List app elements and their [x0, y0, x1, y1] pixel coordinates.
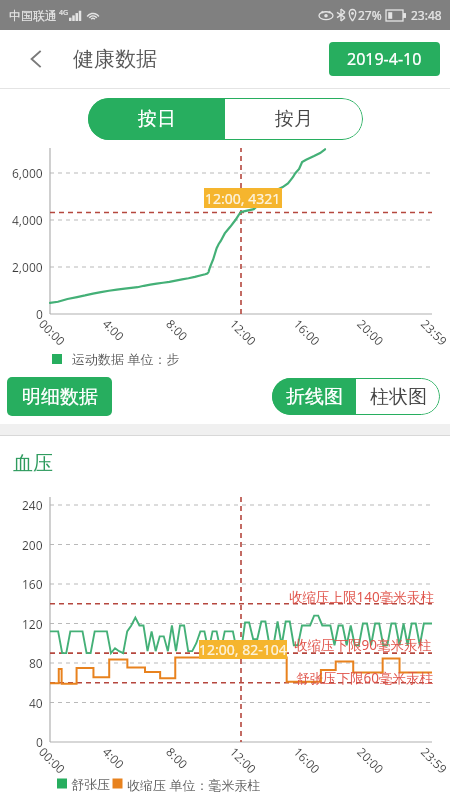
staticText: 健康数据: [73, 46, 157, 72]
staticText: 明细数据: [22, 385, 98, 409]
button[interactable]: 柱状图: [356, 378, 440, 415]
staticText: 27%: [358, 7, 382, 23]
staticText: 折线图: [286, 385, 343, 409]
button[interactable]: 2019-4-10: [329, 42, 440, 76]
staticText: 2019-4-10: [347, 48, 422, 70]
button[interactable]: 折线图: [272, 378, 356, 415]
button[interactable]: 明细数据: [7, 377, 112, 416]
button[interactable]: Back: [18, 41, 54, 77]
staticText: 按日: [138, 107, 176, 131]
staticText: 中国联通: [9, 8, 57, 23]
staticText: 柱状图: [370, 385, 427, 409]
staticText: 23:48: [411, 7, 442, 23]
button[interactable]: 按月: [225, 98, 363, 140]
staticText: 按月: [275, 107, 313, 131]
staticText: 4G: [59, 8, 69, 18]
button[interactable]: 按日: [88, 98, 225, 140]
